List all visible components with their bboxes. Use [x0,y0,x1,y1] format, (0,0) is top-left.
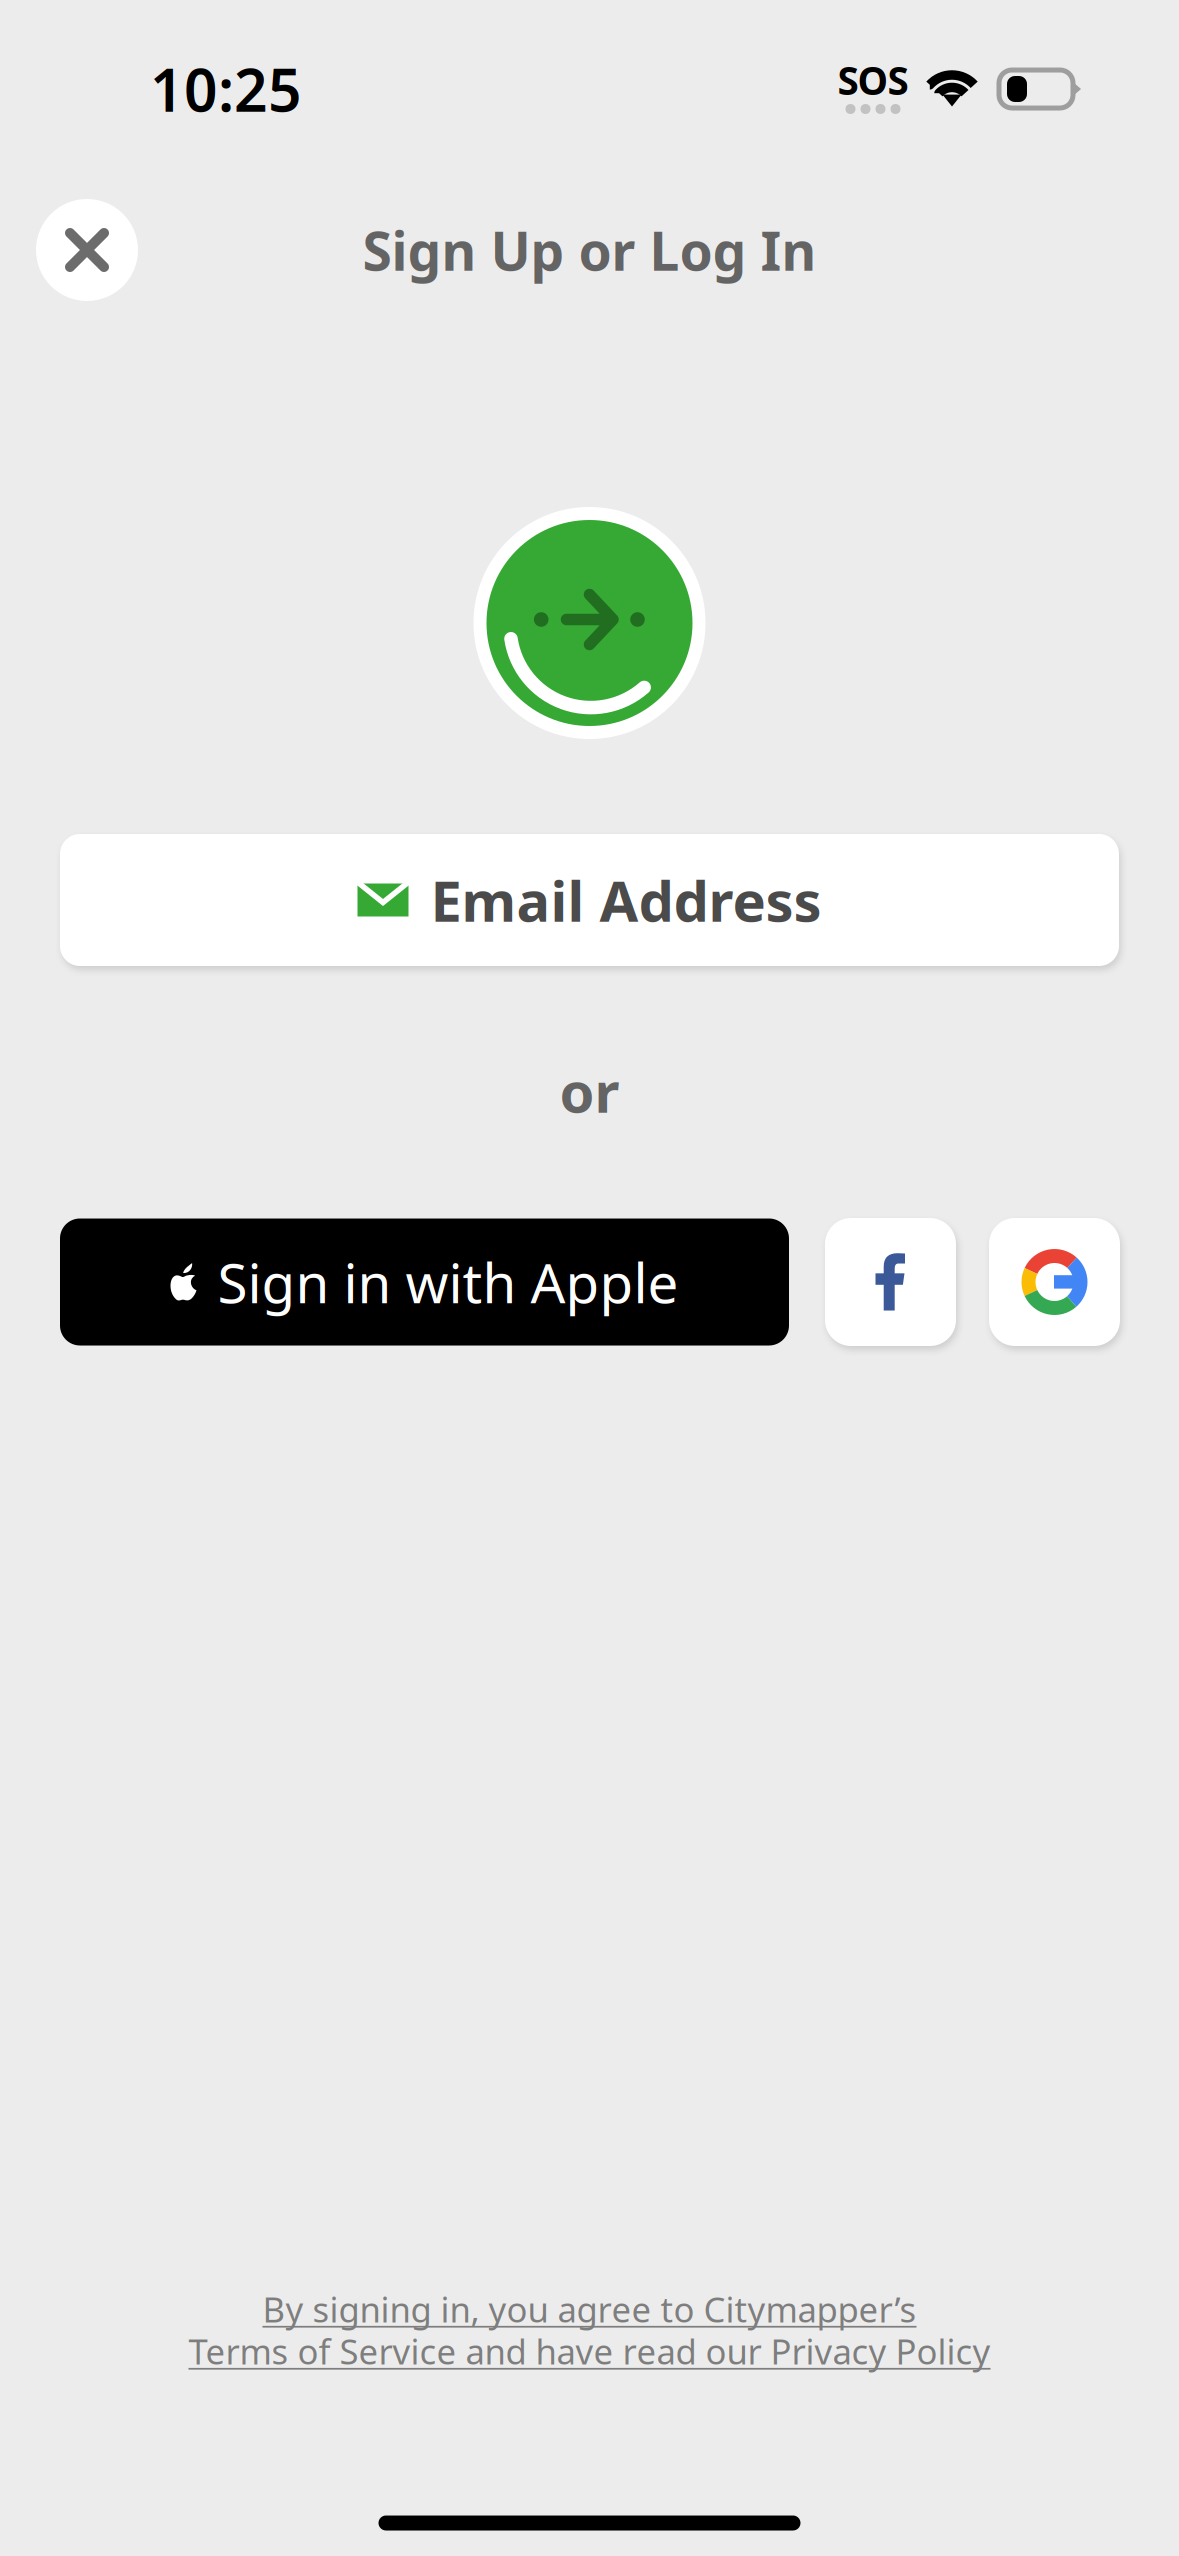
staticText: or [559,1054,619,1128]
staticText: Terms of Service and have read our Priva… [188,2328,990,2374]
staticText: Email Address [430,863,821,937]
button[interactable]: Sign in with Apple [60,1218,789,1345]
button[interactable]: Sign in with Facebook [825,1218,956,1346]
button[interactable]: Close [36,199,138,301]
staticText: By signing in, you agree to Citymapper’s [262,2286,916,2332]
staticText: SOS [837,54,908,106]
staticText: 10:25 [150,50,302,128]
button[interactable]: Email Address [0,834,1179,966]
button[interactable]: By signing in, you agree to Citymapper’s [0,2286,1179,2374]
staticText: Sign in with Apple [217,1246,678,1318]
staticText: Sign Up or Log In [362,215,816,285]
button[interactable]: Sign in with Google [989,1218,1120,1346]
